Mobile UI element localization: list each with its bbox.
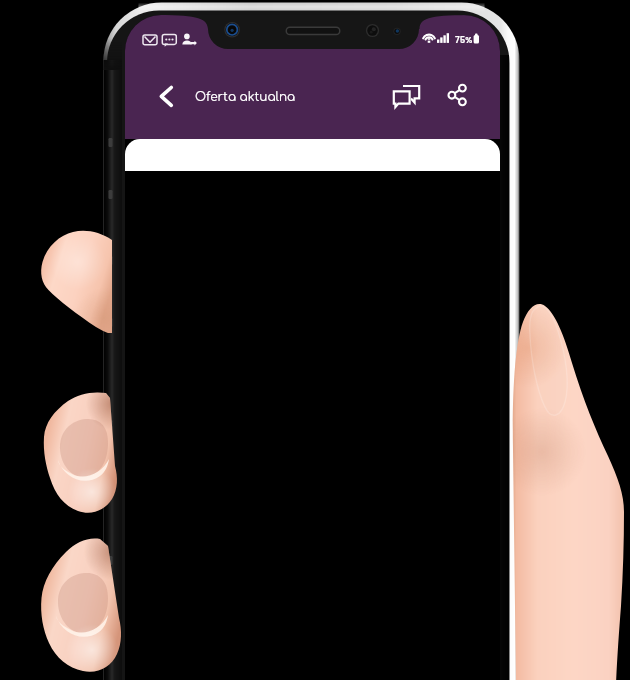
button[interactable]: Share [432, 75, 472, 115]
button[interactable]: Back [155, 87, 195, 127]
staticText: Oferta aktualna [195, 90, 296, 103]
button[interactable]: Messages [387, 79, 427, 119]
staticText: 75% [455, 34, 473, 46]
